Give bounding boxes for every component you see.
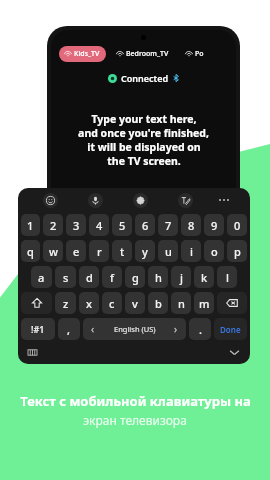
staticText: экран телевизора xyxy=(83,412,187,428)
button[interactable]: Shift xyxy=(21,292,52,314)
button[interactable]: Handwriting xyxy=(163,188,208,212)
button[interactable]: f xyxy=(102,266,122,288)
staticText: z xyxy=(63,296,69,311)
staticText: it will be displayed on xyxy=(87,140,201,154)
staticText: s xyxy=(63,270,69,285)
staticText: 0 xyxy=(234,218,241,233)
staticText: 4 xyxy=(96,218,103,233)
staticText: Bedroom_TV xyxy=(126,49,169,59)
button[interactable]: Bedroom_TV xyxy=(111,46,175,62)
staticText: 8 xyxy=(188,218,195,233)
button[interactable]: h xyxy=(148,266,168,288)
button[interactable]: b xyxy=(148,292,168,314)
staticText: w xyxy=(49,244,58,259)
staticText: Connected xyxy=(121,72,169,84)
staticText: Type your text here, xyxy=(91,112,197,126)
button[interactable]: . xyxy=(189,318,211,340)
button[interactable]: s xyxy=(55,266,76,288)
button[interactable]: d xyxy=(79,266,99,288)
staticText: 1 xyxy=(27,218,34,233)
button[interactable]: Voice input xyxy=(73,188,118,212)
button[interactable]: 8 xyxy=(181,214,201,236)
staticText: ‹ xyxy=(91,322,95,336)
staticText: d xyxy=(86,270,93,285)
button[interactable]: ‹ xyxy=(83,318,186,340)
button[interactable]: c xyxy=(102,292,122,314)
button[interactable]: m xyxy=(194,292,214,314)
staticText: English (US) xyxy=(114,324,156,334)
button[interactable]: 3 xyxy=(66,214,86,236)
button[interactable]: w xyxy=(43,240,63,262)
staticText: › xyxy=(174,322,178,336)
staticText: b xyxy=(155,296,162,311)
button[interactable]: Po xyxy=(180,46,210,62)
staticText: j xyxy=(180,270,183,285)
button[interactable]: Hide keyboard xyxy=(226,344,242,360)
staticText: 2 xyxy=(50,218,57,233)
button[interactable]: g xyxy=(125,266,145,288)
staticText: !#1 xyxy=(31,323,45,335)
staticText: t xyxy=(120,244,125,259)
button[interactable]: y xyxy=(135,240,155,262)
staticText: o xyxy=(211,244,218,259)
staticText: u xyxy=(165,244,172,259)
button[interactable]: 1 xyxy=(21,214,40,236)
staticText: Po xyxy=(195,49,204,59)
button[interactable]: z xyxy=(55,292,76,314)
button[interactable]: , xyxy=(58,318,80,340)
button[interactable]: v xyxy=(125,292,145,314)
button[interactable]: r xyxy=(89,240,109,262)
button[interactable]: Kids_TV xyxy=(59,46,106,62)
button[interactable]: 9 xyxy=(204,214,224,236)
button[interactable]: p xyxy=(227,240,247,262)
staticText: 6 xyxy=(142,218,149,233)
button[interactable]: l xyxy=(217,266,237,288)
button[interactable]: Keyboard layout xyxy=(26,346,38,358)
staticText: m xyxy=(199,296,210,311)
button[interactable]: e xyxy=(66,240,86,262)
button[interactable]: 4 xyxy=(89,214,109,236)
button[interactable]: Backspace xyxy=(217,292,247,314)
button[interactable]: 6 xyxy=(135,214,155,236)
button[interactable]: 5 xyxy=(112,214,132,236)
button[interactable]: o xyxy=(204,240,224,262)
staticText: 9 xyxy=(211,218,218,233)
staticText: i xyxy=(190,244,193,259)
staticText: e xyxy=(73,244,80,259)
button[interactable]: More options xyxy=(208,188,240,212)
button[interactable]: a xyxy=(31,266,52,288)
button[interactable]: 0 xyxy=(227,214,247,236)
button[interactable]: i xyxy=(181,240,201,262)
button[interactable]: Done xyxy=(214,318,247,340)
button[interactable]: 7 xyxy=(158,214,178,236)
button[interactable]: k xyxy=(194,266,214,288)
button[interactable]: !#1 xyxy=(21,318,55,340)
staticText: g xyxy=(132,270,139,285)
button[interactable]: Settings xyxy=(118,188,163,212)
staticText: h xyxy=(155,270,162,285)
staticText: x xyxy=(86,296,92,311)
staticText: 3 xyxy=(73,218,80,233)
button[interactable]: u xyxy=(158,240,178,262)
staticText: 7 xyxy=(165,218,172,233)
staticText: y xyxy=(142,244,148,259)
staticText: c xyxy=(109,296,115,311)
button[interactable]: q xyxy=(21,240,40,262)
button[interactable]: t xyxy=(112,240,132,262)
staticText: Kids_TV xyxy=(74,49,100,59)
button[interactable]: n xyxy=(171,292,191,314)
staticText: q xyxy=(27,244,34,259)
staticText: , xyxy=(67,322,71,337)
staticText: r xyxy=(97,244,102,259)
staticText: 5 xyxy=(119,218,126,233)
staticText: a xyxy=(38,270,45,285)
button[interactable]: Emoji xyxy=(28,188,73,212)
staticText: Текст с мобильной клавиатуры на xyxy=(20,392,251,410)
staticText: the TV screen. xyxy=(107,154,181,168)
staticText: v xyxy=(132,296,138,311)
button[interactable]: x xyxy=(79,292,99,314)
button[interactable]: j xyxy=(171,266,191,288)
button[interactable]: 2 xyxy=(43,214,63,236)
staticText: n xyxy=(178,296,185,311)
staticText: p xyxy=(234,244,241,259)
